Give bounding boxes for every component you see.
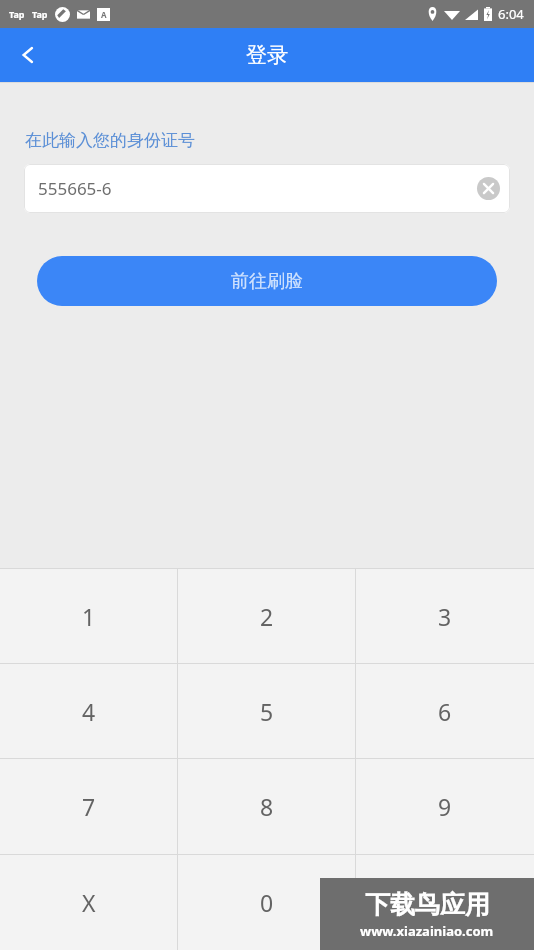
button[interactable]: X [0,855,178,950]
staticText: 6 [438,696,452,727]
button[interactable]: 6 [356,664,534,758]
staticText: 9 [438,791,452,822]
button[interactable]: 2 [178,569,356,663]
staticText: 6:04 [498,5,524,23]
button[interactable]: 555665-6 [24,164,510,213]
staticText: 5 [260,696,274,727]
button[interactable]: Back [0,28,56,82]
button[interactable]: 7 [0,759,178,854]
staticText: Tap [32,8,48,20]
staticText: 3 [438,601,452,632]
button[interactable]: 前往刷脸 [37,256,497,306]
button[interactable]: 3 [356,569,534,663]
button[interactable]: 4 [0,664,178,758]
staticText: 下载鸟应用 [365,889,490,920]
button[interactable]: Clear text [466,164,510,213]
staticText: 0 [260,887,274,918]
staticText: 555665-6 [38,177,466,200]
staticText: 7 [82,791,96,822]
button[interactable] [356,855,534,950]
button[interactable]: 9 [356,759,534,854]
button[interactable]: 8 [178,759,356,854]
staticText: A [101,9,107,20]
staticText: 8 [260,791,274,822]
staticText: Tap [9,8,25,20]
staticText: www.xiazainiao.com [360,922,494,940]
staticText: 登录 [246,42,288,68]
staticText: 4 [82,696,96,727]
staticText: 1 [82,601,96,632]
button[interactable]: 0 [178,855,356,950]
staticText: 2 [260,601,274,632]
staticText: 在此输入您的身份证号 [25,130,195,151]
staticText: X [82,887,96,918]
button[interactable]: 5 [178,664,356,758]
staticText: 前往刷脸 [231,270,303,293]
button[interactable]: 1 [0,569,178,663]
